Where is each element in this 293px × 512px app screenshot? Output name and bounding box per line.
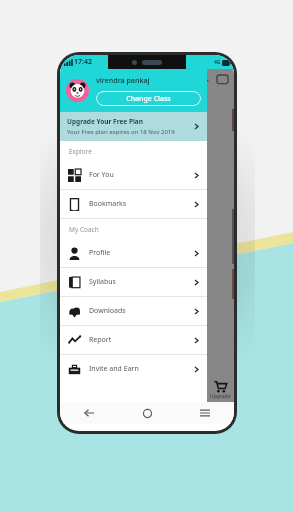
staticText: 17:42 xyxy=(74,57,92,67)
staticText: Explore xyxy=(69,147,92,156)
button[interactable]: Downloads xyxy=(60,297,207,325)
staticText: Profile xyxy=(89,248,193,258)
staticText: For You xyxy=(89,170,193,180)
button[interactable]: Bookmarks xyxy=(60,190,207,218)
staticText: Downloads xyxy=(89,306,193,316)
button[interactable]: Profile xyxy=(60,239,207,267)
button[interactable]: Home xyxy=(140,406,154,420)
button[interactable]: Report xyxy=(60,326,207,354)
staticText: Report xyxy=(89,335,193,345)
staticText: Change Class xyxy=(126,94,171,104)
button[interactable]: For You xyxy=(60,161,207,189)
button[interactable]: Syllabus xyxy=(60,268,207,296)
button[interactable]: Change Class xyxy=(96,91,201,106)
staticText: 4G xyxy=(214,59,221,66)
button[interactable]: Recent apps xyxy=(198,406,212,420)
staticText: Bookmarks xyxy=(89,199,193,209)
staticText: Syllabus xyxy=(89,277,193,287)
staticText: Invite and Earn xyxy=(89,364,193,374)
staticText: Your Free plan expires on 18 Nov 2019 xyxy=(67,128,175,136)
staticText: h xyxy=(76,211,80,219)
staticText: Upgrade Your Free Plan xyxy=(67,117,143,126)
button[interactable]: Upgrade Your Free Plan xyxy=(60,112,207,141)
button[interactable]: Invite and Earn xyxy=(60,355,207,383)
staticText: My Coach xyxy=(69,225,99,234)
button[interactable]: Back xyxy=(82,406,96,420)
staticText: Upgrade xyxy=(210,393,231,400)
staticText: virendra pankaj xyxy=(96,76,150,86)
